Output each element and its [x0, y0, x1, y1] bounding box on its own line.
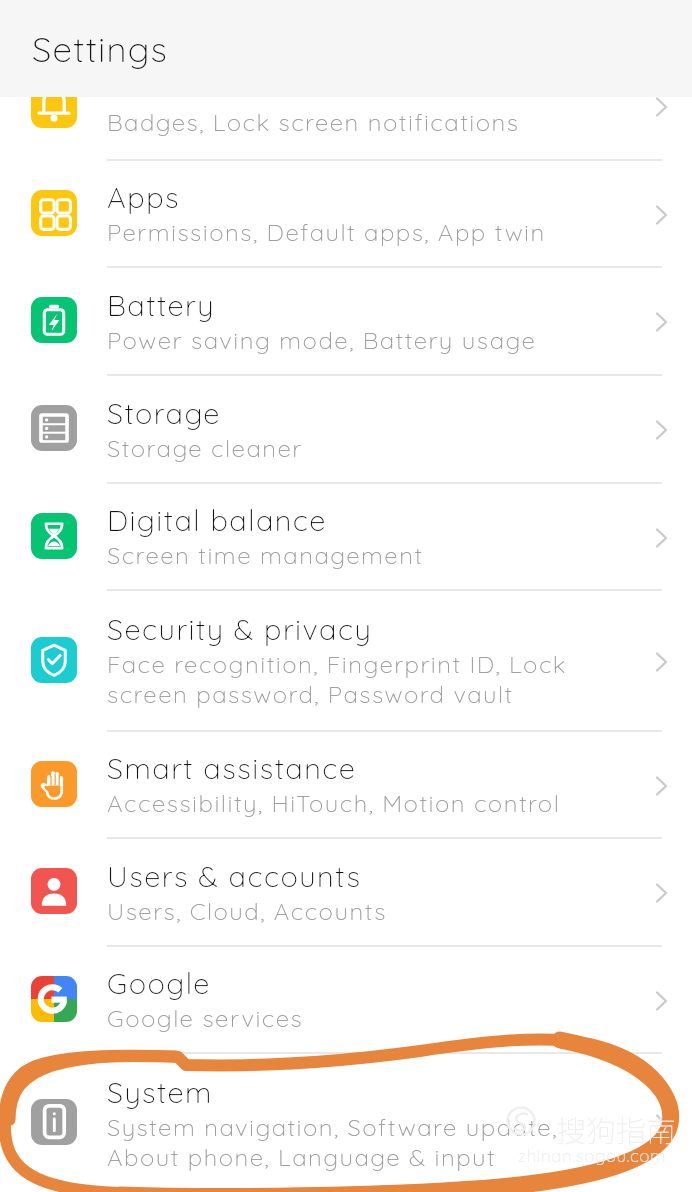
staticText: System [107, 1077, 213, 1110]
staticText: Smart assistance [107, 753, 357, 786]
staticText: Screen time management [107, 540, 424, 570]
button[interactable]: Storage [0, 376, 692, 484]
button[interactable]: Badges, Lock screen notifications [0, 53, 692, 161]
staticText: Apps [107, 182, 181, 215]
button[interactable]: Battery [0, 268, 692, 376]
staticText: zhinan.sogou.com [518, 1145, 667, 1166]
button[interactable]: Security & privacy [0, 591, 692, 732]
staticText: Storage cleaner [107, 433, 303, 463]
button[interactable]: Apps [0, 161, 692, 268]
staticText: Security & privacy [107, 614, 373, 647]
staticText: Digital balance [107, 505, 327, 538]
staticText: Google services [107, 1003, 304, 1033]
staticText: Battery [107, 290, 215, 323]
staticText: Storage [107, 398, 221, 431]
staticText: Google [107, 968, 211, 1001]
staticText: Users & accounts [107, 861, 362, 894]
staticText: Badges, Lock screen notifications [107, 107, 520, 137]
staticText: System navigation, Software update, Abou… [107, 1112, 558, 1172]
staticText: Permissions, Default apps, App twin [107, 217, 546, 247]
staticText: Face recognition, Fingerprint ID, Lock s… [107, 649, 567, 709]
button[interactable]: System [0, 1054, 692, 1192]
staticText: Settings [32, 27, 169, 71]
button[interactable]: Users & accounts [0, 839, 692, 947]
staticText: Accessibility, HiTouch, Motion control [107, 788, 561, 818]
button[interactable]: Smart assistance [0, 732, 692, 839]
button[interactable]: Google [0, 947, 692, 1054]
staticText: Users, Cloud, Accounts [107, 896, 387, 926]
button[interactable]: Digital balance [0, 484, 692, 591]
staticText: 搜狗指南 [556, 1107, 676, 1150]
staticText: Power saving mode, Battery usage [107, 325, 537, 355]
